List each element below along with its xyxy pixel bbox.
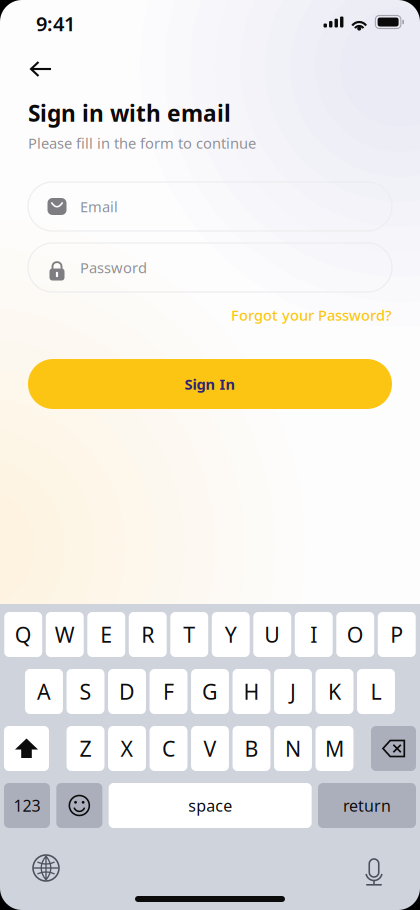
staticText: V	[203, 734, 216, 763]
staticText: U	[264, 620, 280, 649]
button[interactable]: I	[295, 612, 333, 657]
button[interactable]: G	[191, 669, 229, 714]
button[interactable]: K	[316, 669, 353, 714]
staticText: space	[188, 795, 232, 816]
staticText: 123	[13, 795, 40, 816]
button[interactable]: Switch keyboard	[22, 848, 70, 888]
button[interactable]: Back	[30, 53, 74, 85]
button[interactable]: Q	[4, 612, 42, 657]
staticText: Please fill in the form to continue	[28, 133, 256, 153]
button[interactable]: B	[232, 726, 270, 771]
staticText: J	[290, 677, 296, 706]
button[interactable]: A	[25, 669, 63, 714]
staticText: N	[285, 734, 301, 763]
staticText: return	[343, 795, 391, 816]
button[interactable]: Delete	[371, 726, 416, 771]
staticText: Sign in with email	[28, 98, 231, 128]
staticText: Forgot your Password?	[231, 305, 392, 325]
staticText: 9:41	[36, 10, 75, 37]
button[interactable]: C	[149, 726, 187, 771]
staticText: Z	[79, 734, 91, 763]
staticText: O	[347, 620, 364, 649]
button[interactable]: J	[274, 669, 312, 714]
button[interactable]: P	[378, 612, 416, 657]
staticText: C	[162, 734, 175, 763]
staticText: Q	[15, 620, 32, 649]
button[interactable]: V	[191, 726, 229, 771]
button[interactable]: X	[108, 726, 146, 771]
button[interactable]: return	[318, 783, 416, 828]
staticText: H	[243, 677, 259, 706]
button[interactable]: U	[253, 612, 291, 657]
button[interactable]: M	[315, 726, 353, 771]
staticText: X	[120, 734, 133, 763]
button[interactable]: space	[109, 783, 312, 828]
staticText: B	[244, 734, 258, 763]
button[interactable]: L	[357, 669, 395, 714]
button[interactable]: Email	[28, 182, 392, 231]
button[interactable]: Emoji	[56, 783, 102, 828]
staticText: E	[100, 620, 112, 649]
staticText: S	[79, 677, 91, 706]
button[interactable]: Shift	[4, 726, 49, 771]
staticText: P	[390, 620, 403, 649]
staticText: A	[37, 677, 51, 706]
button[interactable]: O	[336, 612, 374, 657]
button[interactable]: Password	[28, 243, 392, 292]
button[interactable]: W	[46, 612, 84, 657]
button[interactable]: E	[87, 612, 125, 657]
button[interactable]: F	[150, 669, 187, 714]
button[interactable]: D	[108, 669, 146, 714]
staticText: Password	[80, 258, 147, 277]
button[interactable]: Y	[212, 612, 250, 657]
staticText: W	[55, 620, 75, 649]
staticText: I	[310, 620, 317, 649]
button[interactable]: S	[67, 669, 104, 714]
button[interactable]: R	[129, 612, 167, 657]
button[interactable]: Dictate	[350, 848, 398, 888]
button[interactable]: T	[170, 612, 208, 657]
button[interactable]: Z	[66, 726, 104, 771]
staticText: T	[183, 620, 195, 649]
staticText: G	[202, 677, 218, 706]
staticText: L	[370, 677, 381, 706]
button[interactable]: Sign In	[28, 359, 392, 409]
button[interactable]: 123	[4, 783, 50, 828]
staticText: K	[328, 677, 341, 706]
button[interactable]: N	[274, 726, 312, 771]
button[interactable]: Forgot your Password?	[231, 305, 392, 325]
staticText: R	[141, 620, 154, 649]
staticText: D	[119, 677, 135, 706]
staticText: Y	[225, 620, 237, 649]
button[interactable]: H	[233, 669, 270, 714]
staticText: Email	[80, 197, 118, 216]
staticText: F	[163, 677, 174, 706]
staticText: M	[325, 734, 344, 763]
staticText: Sign In	[184, 374, 235, 394]
